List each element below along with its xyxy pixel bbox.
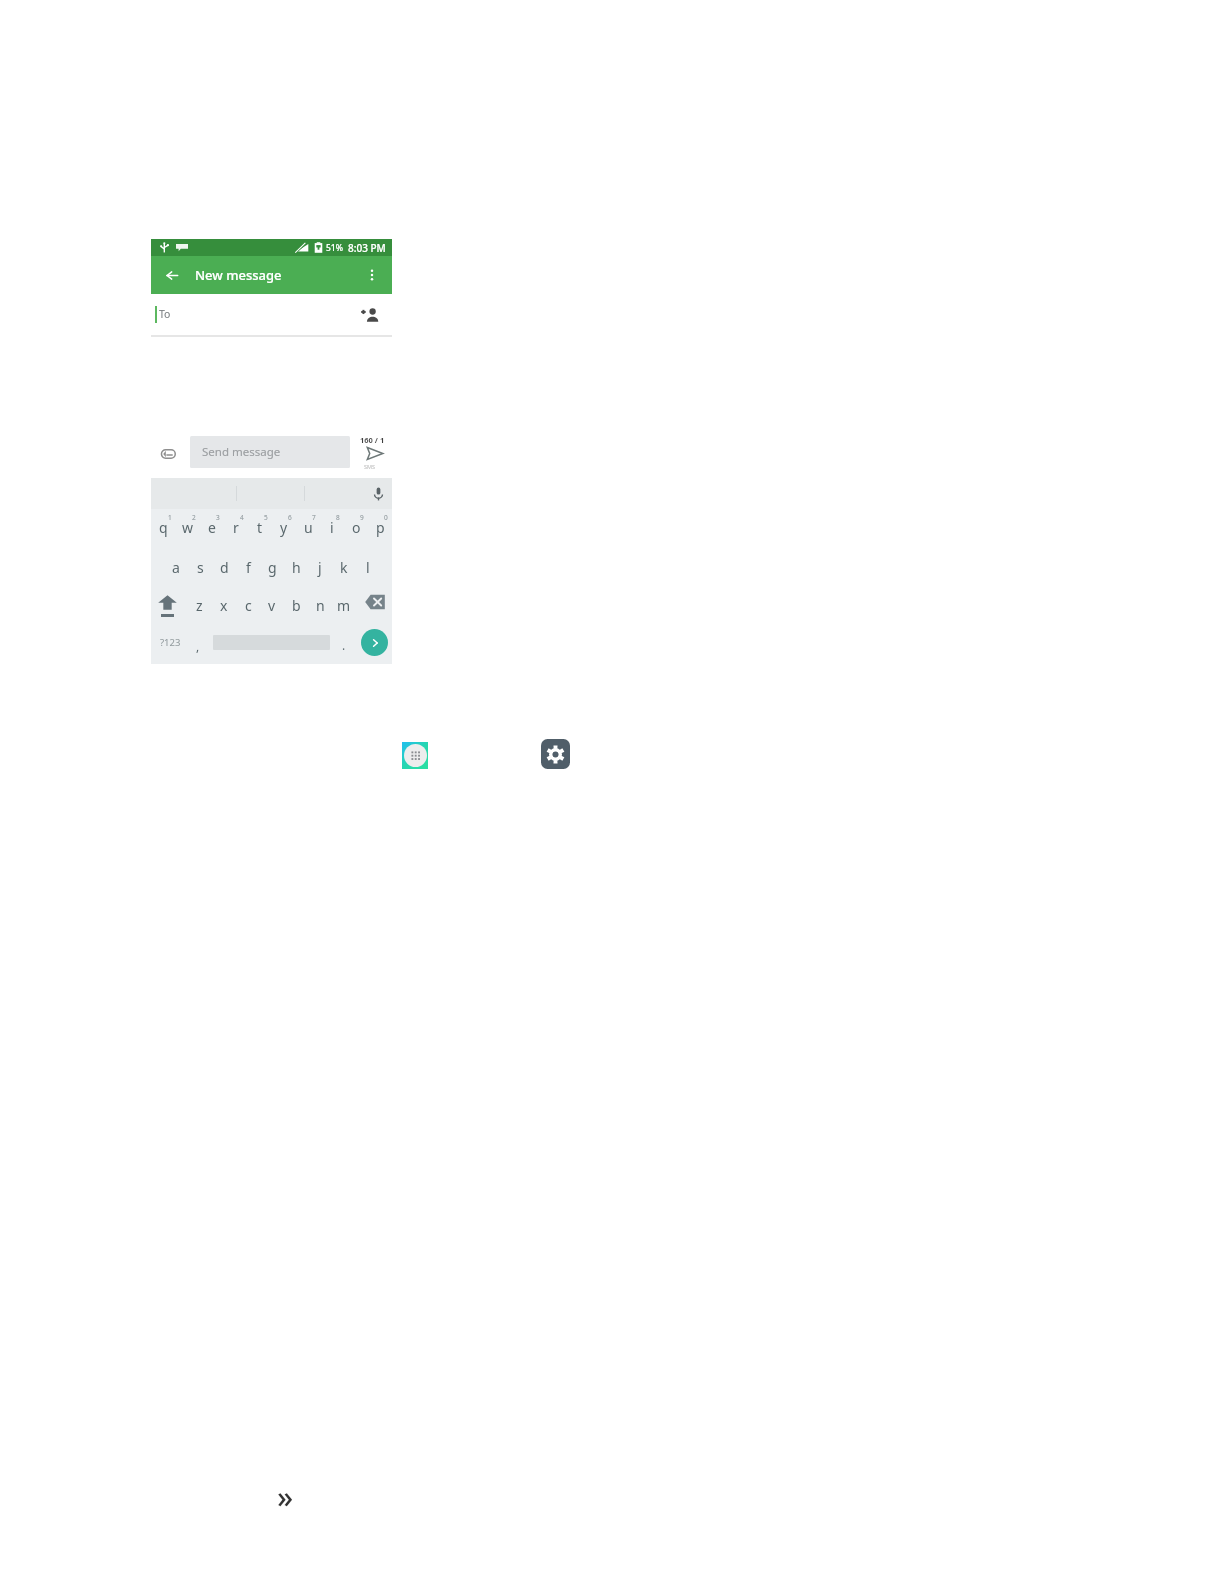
staticText: 9 (360, 513, 364, 522)
button[interactable] (207, 624, 335, 662)
button[interactable]: p (368, 509, 392, 548)
button[interactable]: b (284, 586, 308, 624)
button[interactable]: i (320, 509, 344, 548)
button[interactable]: . (335, 624, 353, 662)
staticText: 2 (192, 513, 196, 522)
button[interactable]: m (332, 586, 356, 624)
staticText: . (342, 637, 346, 653)
button[interactable]: d (212, 548, 236, 586)
button[interactable]: Add contact (358, 302, 382, 326)
button[interactable]: j (308, 548, 332, 586)
button[interactable]: t (248, 509, 272, 548)
staticText: e (208, 518, 216, 537)
button[interactable]: u (296, 509, 320, 548)
staticText: c (245, 596, 252, 615)
staticText: x (220, 596, 228, 615)
staticText: o (352, 518, 361, 537)
button[interactable]: w (176, 509, 200, 548)
staticText: s (197, 558, 204, 577)
button[interactable]: ?123 (157, 624, 183, 662)
staticText: j (318, 558, 322, 577)
staticText: m (337, 596, 351, 615)
button[interactable]: c (236, 586, 260, 624)
staticText: z (196, 596, 203, 615)
button[interactable]: f (236, 548, 260, 586)
staticText: ?123 (160, 636, 181, 649)
staticText: 4 (240, 513, 244, 522)
staticText: a (172, 558, 180, 577)
staticText: v (268, 596, 276, 615)
button[interactable]: x (212, 586, 236, 624)
button[interactable]: a (164, 548, 188, 586)
button[interactable]: o (344, 509, 368, 548)
button[interactable]: g (260, 548, 284, 586)
staticText: 3 (216, 513, 220, 522)
staticText: g (268, 558, 277, 577)
staticText: p (376, 518, 385, 537)
staticText: b (292, 596, 301, 615)
staticText: 8:03 PM (348, 241, 386, 255)
button[interactable]: Send (360, 442, 389, 464)
button[interactable]: Attach (159, 446, 177, 462)
staticText: u (304, 518, 313, 537)
button[interactable]: Shift (151, 586, 187, 624)
button[interactable]: e (200, 509, 224, 548)
button[interactable]: y (272, 509, 296, 548)
button[interactable]: s (188, 548, 212, 586)
staticText: , (196, 638, 200, 654)
staticText: Send message (202, 444, 281, 460)
staticText: 51% (326, 242, 343, 254)
button[interactable]: l (356, 548, 380, 586)
button[interactable]: q (151, 509, 176, 548)
staticText: h (292, 558, 301, 577)
staticText: r (233, 518, 239, 537)
button[interactable]: z (187, 586, 212, 624)
staticText: To (159, 307, 171, 321)
button[interactable]: v (260, 586, 284, 624)
staticText: » (277, 1476, 294, 1517)
button[interactable]: All apps (402, 742, 428, 769)
staticText: SMS (364, 463, 376, 470)
staticText: 160 / 1 (360, 435, 385, 445)
staticText: 8 (336, 513, 340, 522)
button[interactable]: Back (157, 256, 187, 294)
button[interactable]: n (308, 586, 332, 624)
button[interactable]: More options (359, 256, 385, 294)
button[interactable]: h (284, 548, 308, 586)
button[interactable]: Enter (361, 629, 388, 656)
staticText: w (182, 518, 194, 537)
staticText: y (280, 518, 288, 537)
staticText: 7 (312, 513, 316, 522)
button[interactable]: r (224, 509, 248, 548)
button[interactable]: Backspace (356, 586, 392, 624)
button[interactable]: Send message (190, 436, 350, 468)
staticText: 5 (264, 513, 268, 522)
staticText: 6 (288, 513, 292, 522)
staticText: f (246, 558, 251, 577)
staticText: i (330, 518, 334, 537)
button[interactable]: k (332, 548, 356, 586)
button[interactable]: Settings (541, 739, 570, 769)
staticText: d (220, 558, 229, 577)
button[interactable]: Voice input (366, 478, 390, 509)
staticText: 1 (168, 513, 172, 522)
staticText: t (257, 518, 263, 537)
staticText: k (340, 558, 348, 577)
button[interactable]: To (151, 294, 392, 337)
staticText: 0 (384, 513, 388, 522)
staticText: n (316, 596, 325, 615)
button[interactable]: , (189, 624, 207, 662)
staticText: q (159, 518, 168, 537)
staticText: l (366, 558, 370, 577)
staticText: New message (195, 266, 282, 284)
